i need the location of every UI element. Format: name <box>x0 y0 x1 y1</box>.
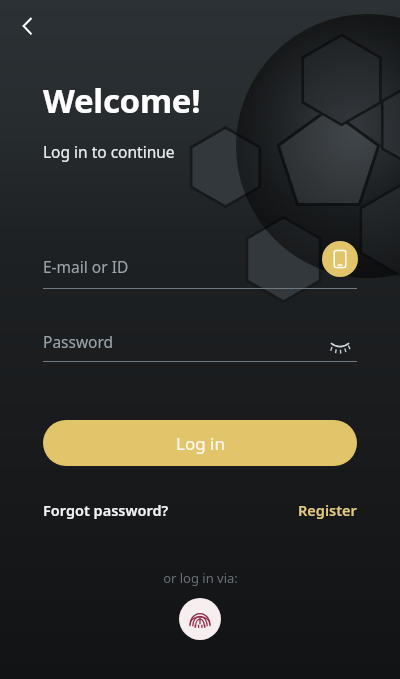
button[interactable]: E-mail or ID <box>43 252 313 292</box>
staticText: Welcome! <box>43 78 201 123</box>
button[interactable]: Log in <box>43 420 357 466</box>
staticText: E-mail or ID <box>43 256 129 277</box>
staticText: Log in to continue <box>43 141 175 162</box>
staticText: Forgot password? <box>43 500 169 520</box>
button[interactable]: Log in with phone number <box>322 241 358 277</box>
button[interactable]: Show password <box>322 326 358 362</box>
button[interactable]: Password <box>43 327 313 363</box>
staticText: or log in via: <box>163 569 238 587</box>
staticText: Log in <box>176 432 225 455</box>
button[interactable]: Back <box>6 4 50 48</box>
button[interactable]: Forgot password? <box>43 496 169 524</box>
staticText: Register <box>298 500 357 520</box>
button[interactable]: Register <box>298 496 357 524</box>
button[interactable]: Log in with fingerprint <box>179 598 221 640</box>
staticText: Password <box>43 331 114 352</box>
